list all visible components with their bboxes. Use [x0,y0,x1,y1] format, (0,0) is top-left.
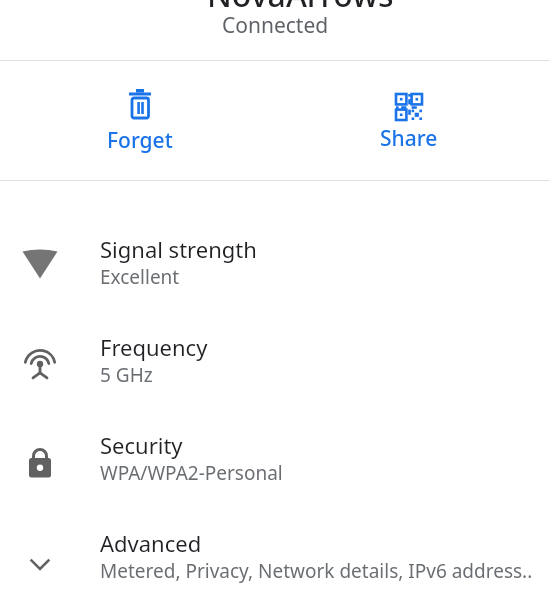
staticText: Security [100,430,183,460]
staticText: Metered, Privacy, Network details, IPv6 … [100,558,533,584]
staticText: Excellent [100,264,180,290]
staticText: Frequency [100,332,208,362]
button[interactable]: Advanced [0,510,550,600]
button[interactable]: Share [275,61,550,180]
staticText: Share [380,124,438,153]
staticText: WPA/WPA2-Personal [100,460,283,486]
staticText: Forget [107,126,173,155]
staticText: 5 GHz [100,362,153,388]
button[interactable]: Signal strength [0,216,550,314]
staticText: NovaArrows [207,0,394,17]
button[interactable]: Frequency [0,314,550,412]
button[interactable]: Forget [0,61,275,180]
staticText: Advanced [100,528,202,558]
button[interactable]: Security [0,412,550,510]
staticText: Signal strength [100,234,257,264]
staticText: Connected [222,11,329,40]
